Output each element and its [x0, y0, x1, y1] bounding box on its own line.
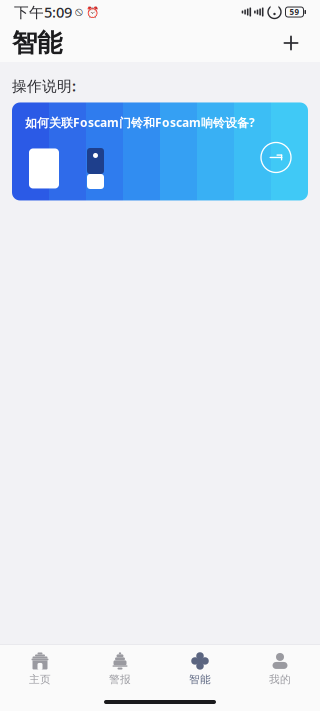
- button[interactable]: 警报: [80, 645, 160, 693]
- button[interactable]: 主页: [0, 645, 80, 693]
- staticText: ⏰: [83, 5, 99, 19]
- button[interactable]: 我的: [240, 645, 320, 693]
- staticText: 智能: [189, 673, 211, 686]
- staticText: ⦸: [72, 6, 83, 18]
- button[interactable]: 如何关联Foscam门铃和Foscam响铃设备?: [12, 102, 308, 200]
- staticText: 我的: [269, 673, 291, 686]
- button[interactable]: 智能: [160, 645, 240, 693]
- staticText: 如何关联Foscam门铃和Foscam响铃设备?: [25, 114, 255, 130]
- staticText: 59: [289, 7, 299, 17]
- staticText: 操作说明:: [12, 76, 76, 95]
- staticText: 智能: [12, 27, 62, 58]
- staticText: 警报: [109, 673, 131, 686]
- staticText: 主页: [29, 673, 51, 686]
- staticText: 下午5:09: [14, 2, 72, 22]
- button[interactable]: 添加: [274, 26, 308, 60]
